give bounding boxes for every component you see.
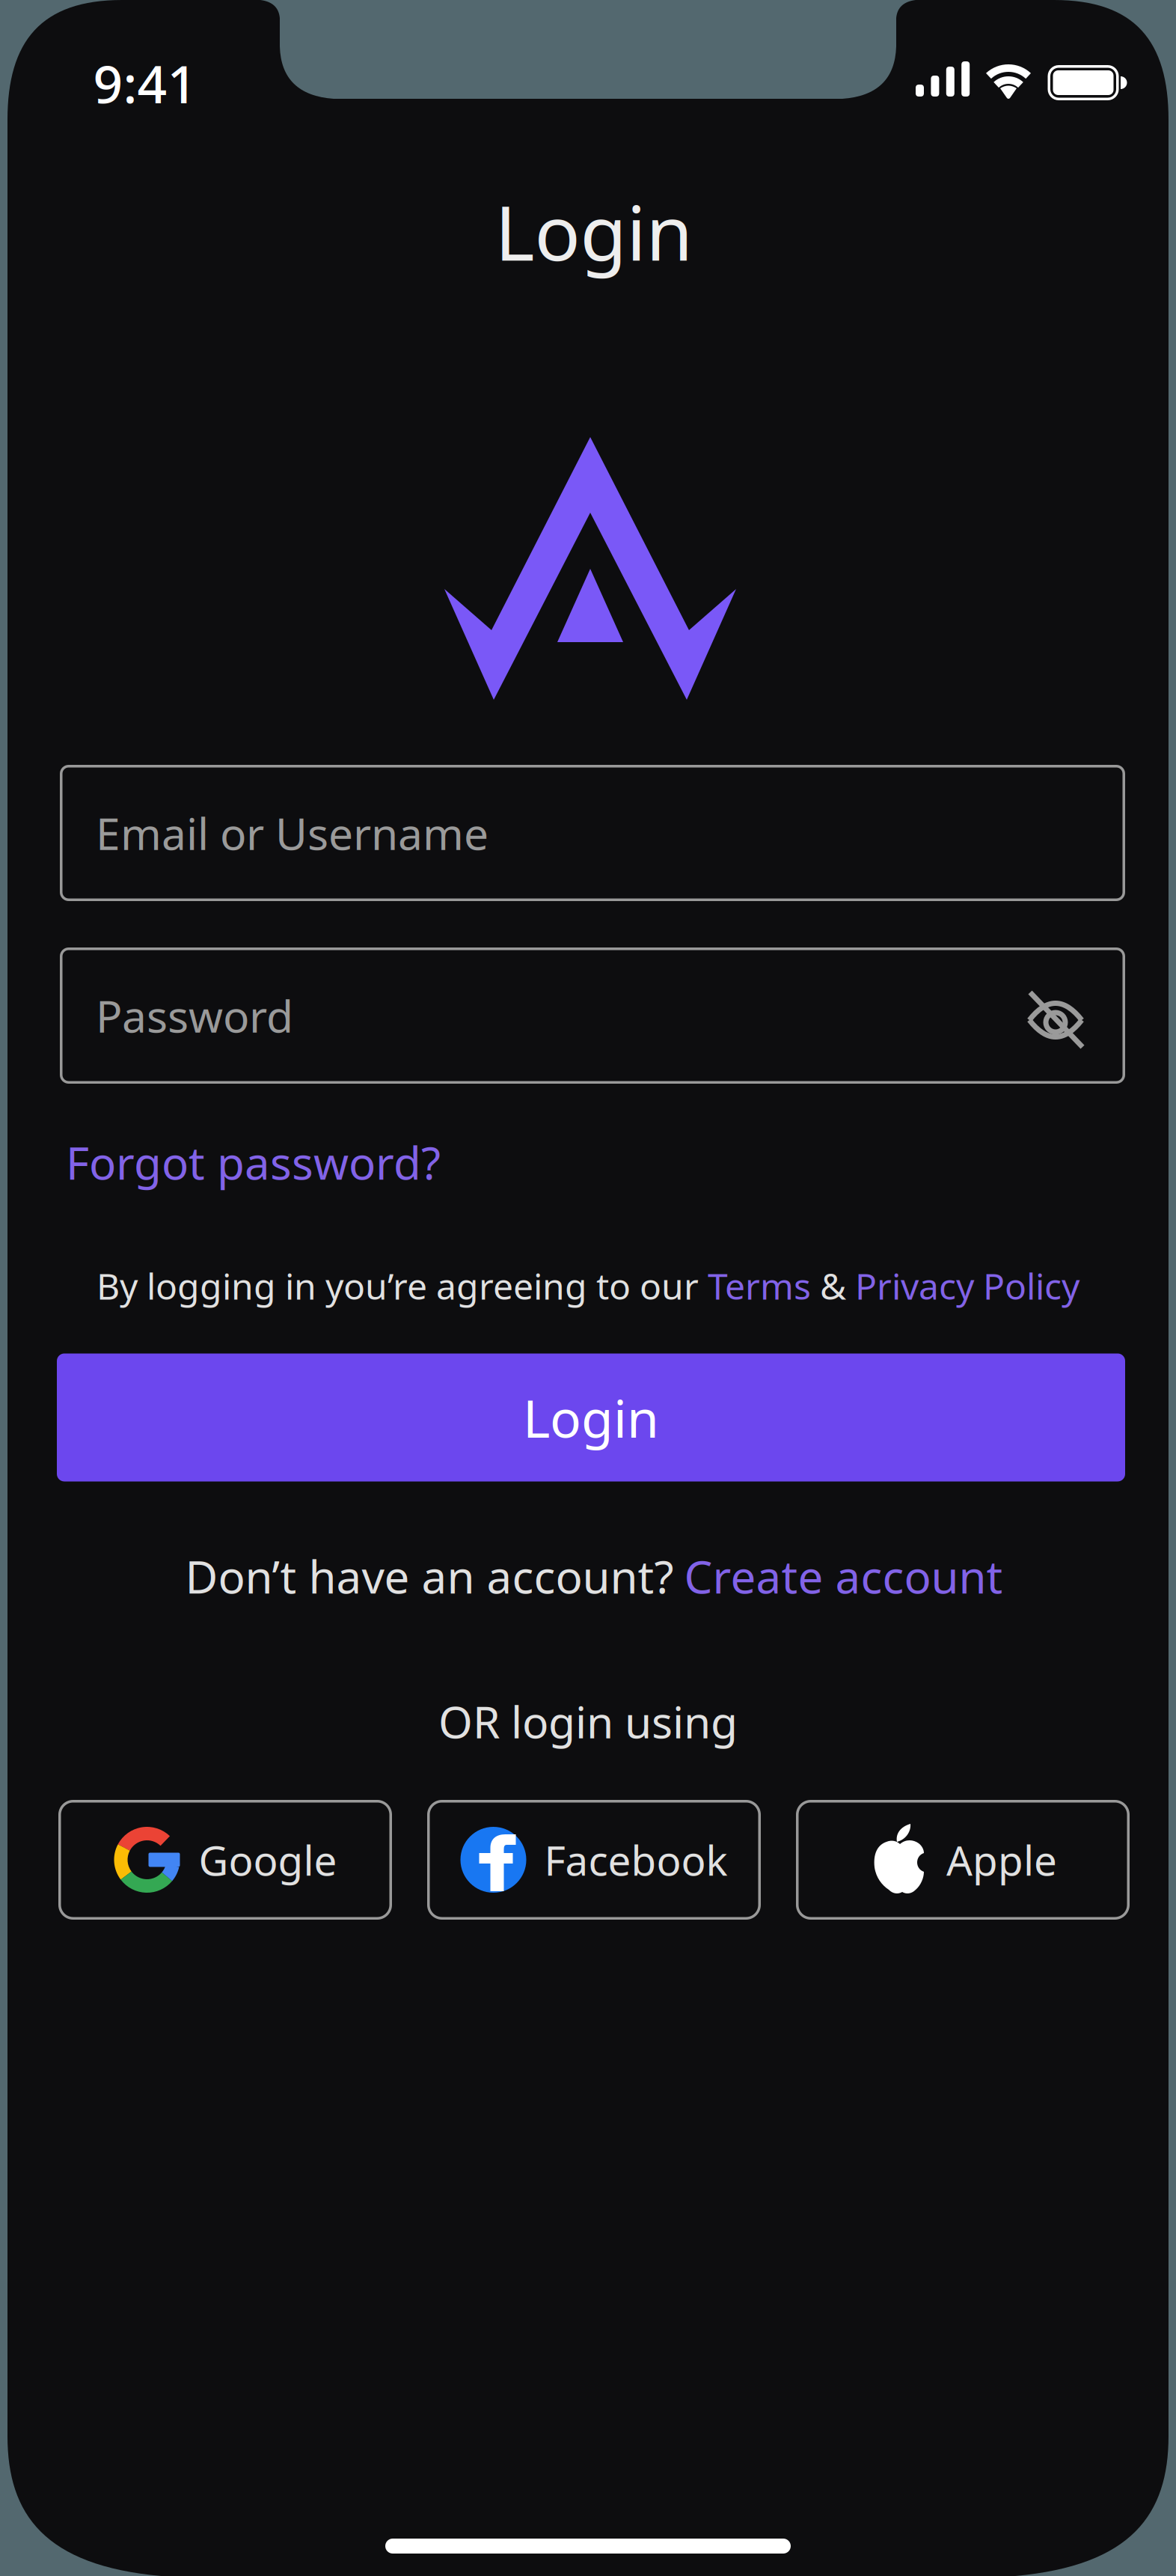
button[interactable]: Apple xyxy=(796,1800,1130,1920)
button[interactable]: Google xyxy=(58,1800,392,1920)
staticText: By logging in you’re agreeing to our xyxy=(97,1262,708,1310)
button[interactable]: Login xyxy=(57,1353,1125,1481)
staticText: Apple xyxy=(946,1833,1057,1887)
staticText: Don’t have an account? xyxy=(185,1546,674,1606)
staticText: Privacy Policy xyxy=(855,1262,1079,1310)
staticText: Create account xyxy=(684,1546,1003,1606)
staticText: & xyxy=(811,1262,855,1310)
button[interactable]: Facebook xyxy=(427,1800,761,1920)
staticText: Login xyxy=(523,1383,659,1452)
staticText: Facebook xyxy=(544,1833,728,1887)
staticText: 9:41 xyxy=(93,49,197,118)
staticText: Email or Username xyxy=(96,804,489,862)
staticText: Terms xyxy=(708,1262,811,1310)
button[interactable]: Terms xyxy=(708,1262,811,1310)
staticText: Password xyxy=(96,986,293,1045)
staticText: Forgot password? xyxy=(66,1132,441,1192)
button[interactable]: Email or Username xyxy=(60,765,1125,901)
staticText: Login xyxy=(495,181,693,282)
button[interactable]: Password xyxy=(60,947,1125,1084)
button[interactable]: Forgot password? xyxy=(66,1132,441,1192)
button[interactable]: Show password xyxy=(1021,986,1090,1054)
staticText: Google xyxy=(199,1833,337,1887)
button[interactable]: Privacy Policy xyxy=(855,1262,1079,1310)
button[interactable]: Create account xyxy=(684,1546,1003,1606)
staticText: OR login using xyxy=(438,1692,738,1750)
